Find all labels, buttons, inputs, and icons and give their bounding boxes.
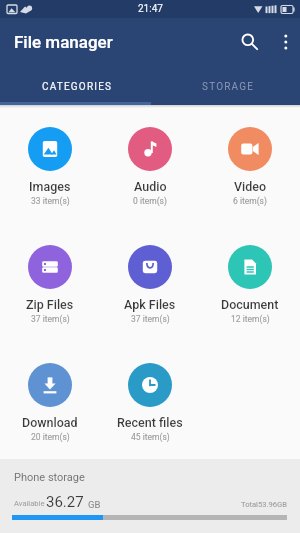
staticText: 21:47 (138, 3, 163, 15)
button[interactable]: Apk Files (105, 241, 195, 325)
staticText: File manager (14, 32, 113, 52)
button[interactable]: Video (205, 123, 295, 207)
staticText: CATEGORIES (42, 81, 113, 93)
button[interactable]: Images (5, 123, 95, 207)
staticText: Phone storage (14, 471, 85, 484)
staticText: 36.27 (46, 493, 84, 511)
button[interactable]: Download (5, 359, 95, 443)
staticText: Zip Files (26, 297, 74, 312)
staticText: 0 item(s) (133, 196, 167, 206)
staticText: 20 item(s) (31, 432, 70, 442)
button[interactable]: Recent files (105, 359, 195, 443)
staticText: Document (221, 297, 279, 312)
staticText: 6 item(s) (233, 196, 267, 206)
staticText: 37 item(s) (131, 314, 170, 324)
staticText: 33 item(s) (31, 196, 70, 206)
staticText: STORAGE (202, 81, 255, 93)
staticText: Recent files (117, 415, 183, 430)
staticText: GB (88, 499, 101, 510)
button[interactable]: More options (267, 23, 300, 60)
staticText: 45 item(s) (131, 432, 170, 442)
staticText: Audio (134, 179, 167, 194)
staticText: Apk Files (124, 297, 176, 312)
button[interactable]: CATEGORIES (0, 70, 150, 105)
staticText: Available (14, 499, 45, 508)
staticText: Video (234, 179, 267, 194)
staticText: Download (22, 415, 78, 430)
staticText: 37 item(s) (31, 314, 70, 324)
staticText: 12 item(s) (231, 314, 270, 324)
button[interactable]: STORAGE (150, 70, 300, 105)
button[interactable]: Audio (105, 123, 195, 207)
button[interactable]: Zip Files (5, 241, 95, 325)
staticText: Images (29, 179, 71, 194)
button[interactable]: Search (228, 20, 271, 63)
staticText: Total53.96GB (241, 500, 287, 509)
button[interactable]: Document (205, 241, 295, 325)
